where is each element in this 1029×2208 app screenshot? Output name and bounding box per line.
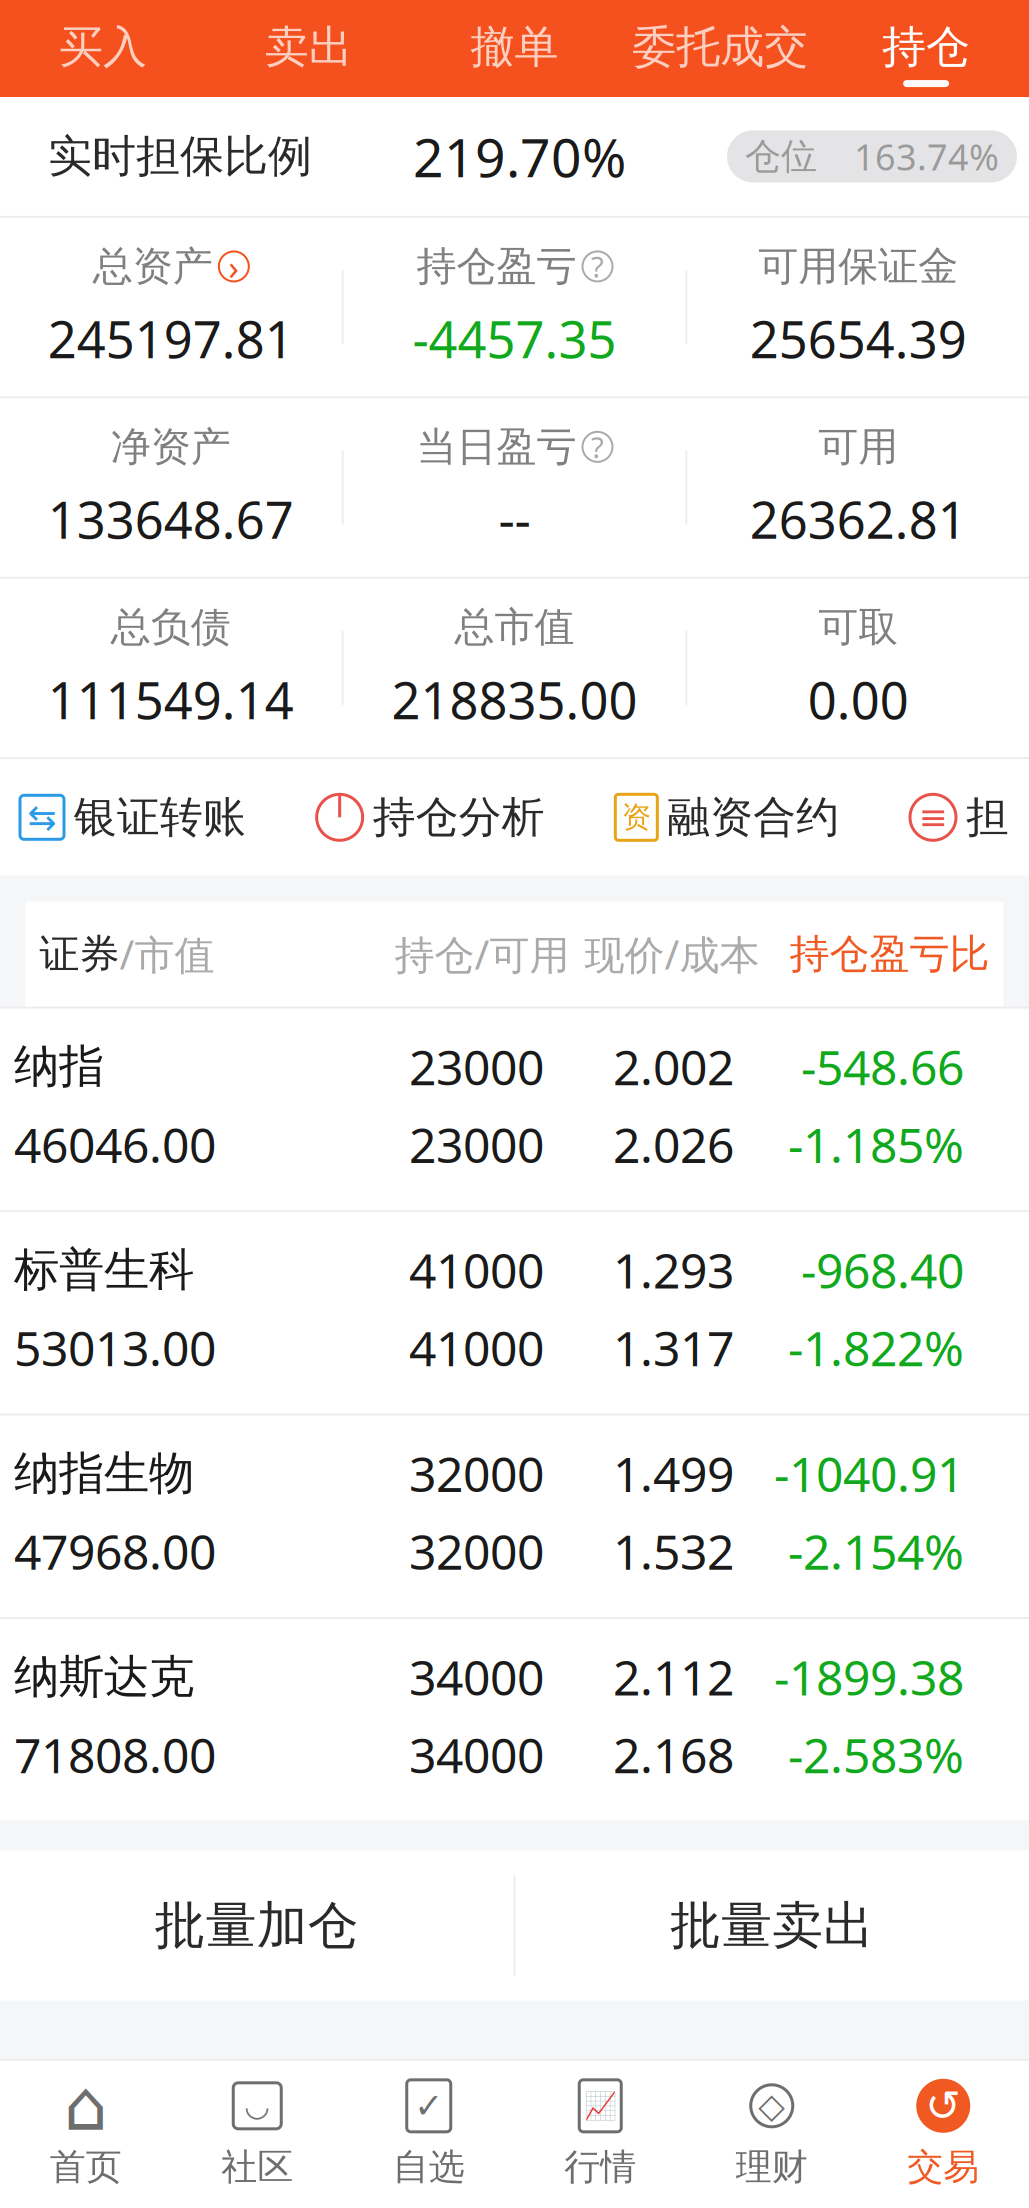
staticText: -2.583% (788, 1723, 964, 1786)
button[interactable]: 📈 (514, 2061, 686, 2207)
staticText: 社区 (221, 2145, 293, 2189)
staticText: 持仓盈亏 (416, 242, 576, 291)
staticText: 批量卖出 (670, 1895, 874, 1957)
button[interactable]: ◇ (686, 2061, 857, 2207)
staticText: 当日盈亏 (416, 422, 576, 471)
staticText: 撤单 (470, 20, 558, 74)
button[interactable]: 买入 (0, 0, 206, 97)
staticText: 可用 (818, 422, 898, 471)
button[interactable]: 资 (615, 781, 839, 853)
staticText: /市值 (119, 927, 214, 981)
staticText: ◇ (758, 2086, 785, 2125)
staticText: 持仓盈亏比 (789, 929, 989, 979)
staticText: 总负债 (111, 603, 231, 652)
staticText: ⇆ (27, 798, 56, 837)
button[interactable]: ⇆ (20, 781, 246, 853)
staticText: 34000 (409, 1645, 544, 1709)
staticText: 26362.81 (750, 485, 967, 553)
staticText: 理财 (736, 2145, 808, 2189)
staticText: 纳斯达克 (14, 1649, 194, 1705)
staticText: › (228, 243, 239, 289)
staticText: 245197.81 (48, 305, 294, 372)
staticText: -- (498, 485, 530, 553)
staticText: ? (591, 247, 604, 286)
staticText: 📈 (584, 2091, 617, 2121)
staticText: 持仓 (882, 20, 970, 74)
staticText: 交易 (907, 2145, 979, 2189)
staticText: 1.532 (613, 1519, 734, 1583)
staticText: 净资产 (111, 422, 231, 471)
staticText: 总市值 (454, 603, 574, 652)
staticText: 融资合约 (667, 791, 839, 843)
staticText: 自选 (393, 2145, 465, 2189)
staticText: -2.154% (788, 1519, 964, 1583)
staticText: 批量加仓 (155, 1895, 359, 1957)
staticText: 163.74% (854, 133, 999, 180)
staticText: 34000 (409, 1723, 544, 1786)
staticText: 0.00 (808, 666, 909, 733)
staticText: 41000 (409, 1316, 544, 1380)
staticText: 资 (622, 799, 651, 835)
staticText: 219.70% (413, 121, 626, 192)
staticText: 实时担保比例 (48, 129, 312, 183)
staticText: 首页 (50, 2145, 122, 2189)
staticText: 133648.67 (48, 485, 294, 553)
staticText: ≡ (918, 798, 947, 837)
staticText: 可取 (818, 603, 898, 652)
staticText: 总资产 (93, 242, 213, 291)
staticText: 32000 (409, 1442, 544, 1505)
staticText: 2.168 (613, 1723, 734, 1786)
staticText: 23000 (409, 1112, 544, 1176)
button[interactable]: ↺ (857, 2061, 1029, 2207)
staticText: 标普生科 (14, 1242, 194, 1298)
button[interactable]: 持仓 (823, 0, 1029, 97)
staticText: -1.185% (788, 1112, 964, 1176)
button[interactable]: ⌂ (0, 2061, 171, 2207)
staticText: 47968.00 (14, 1519, 216, 1583)
staticText: ◡ (244, 2089, 270, 2122)
staticText: 现价/成本 (584, 927, 759, 981)
staticText: 111549.14 (48, 666, 294, 733)
staticText: 行情 (564, 2145, 636, 2189)
staticText: 可用保证金 (758, 242, 958, 291)
staticText: 持仓分析 (373, 791, 545, 843)
staticText: 53013.00 (14, 1316, 216, 1380)
button[interactable]: ≡ (910, 781, 1009, 853)
button[interactable]: 纳斯达克 (0, 1619, 1029, 1821)
staticText: -1040.91 (774, 1442, 964, 1505)
staticText: 1.317 (613, 1316, 734, 1380)
staticText: 纳指生物 (14, 1446, 194, 1501)
staticText: 纳指 (14, 1039, 104, 1094)
staticText: 买入 (59, 20, 147, 74)
staticText: ⌂ (64, 2066, 108, 2145)
staticText: 卖出 (265, 20, 353, 74)
staticText: 仓位 (745, 134, 817, 178)
staticText: ? (591, 427, 604, 466)
staticText: 41000 (409, 1238, 544, 1302)
staticText: 担 (966, 791, 1009, 843)
staticText: 71808.00 (14, 1723, 216, 1786)
button[interactable]: 撤单 (412, 0, 617, 97)
staticText: 32000 (409, 1519, 544, 1583)
staticText: 2.026 (613, 1112, 734, 1176)
button[interactable]: 标普生科 (0, 1212, 1029, 1414)
staticText: 证券 (39, 929, 119, 979)
button[interactable]: 纳指生物 (0, 1416, 1029, 1617)
staticText: 1.293 (613, 1238, 734, 1302)
staticText: -968.40 (801, 1238, 964, 1302)
button[interactable]: ◡ (171, 2061, 343, 2207)
staticText: -548.66 (801, 1035, 964, 1098)
button[interactable]: 委托成交 (617, 0, 823, 97)
staticText: -1899.38 (774, 1645, 964, 1709)
button[interactable]: 批量卖出 (515, 1851, 1029, 2001)
staticText: 23000 (409, 1035, 544, 1098)
staticText: ✓ (414, 2086, 443, 2125)
button[interactable]: ✓ (343, 2061, 514, 2207)
button[interactable]: 持仓分析 (317, 781, 545, 853)
staticText: 2.112 (613, 1645, 734, 1709)
button[interactable]: 纳指 (0, 1009, 1029, 1210)
staticText: 委托成交 (632, 20, 808, 74)
button[interactable]: 批量加仓 (0, 1851, 513, 2001)
button[interactable]: 卖出 (206, 0, 412, 97)
staticText: -4457.35 (412, 305, 616, 372)
